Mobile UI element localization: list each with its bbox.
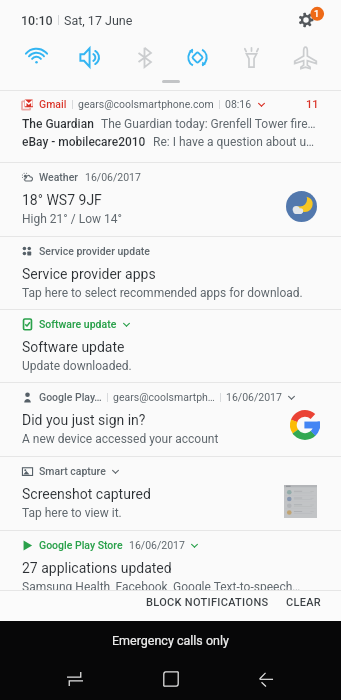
staticText: Gmail [39, 98, 67, 110]
staticText: Did you just sign in? [22, 412, 146, 428]
staticText: The Guardian [22, 117, 94, 131]
staticText: A new device accessed your account [22, 432, 219, 446]
staticText: gears@coolsmartphone.com [78, 98, 214, 110]
staticText: Software update [22, 339, 125, 355]
staticText: Sat, 17 June [64, 13, 133, 28]
staticText: 10:10 [21, 13, 53, 28]
staticText: 27 applications updated [22, 560, 172, 576]
button[interactable]: Wi-Fi [15, 36, 57, 78]
button[interactable]: Settings [297, 5, 327, 35]
staticText: High 21° / Low 14° [22, 212, 122, 226]
staticText: BLOCK NOTIFICATIONS [146, 596, 269, 609]
staticText: 16/06/2017 [85, 171, 141, 183]
staticText: Re: I have a question about u… [153, 135, 315, 149]
button[interactable]: Sound [69, 36, 111, 78]
button[interactable]: Weather [0, 163, 341, 236]
staticText: The Guardian today: Grenfell Tower fire… [101, 117, 316, 131]
staticText: Google Play Store [39, 539, 123, 551]
button[interactable]: CLEAR [283, 591, 325, 614]
button[interactable]: Google Play… [0, 383, 341, 456]
staticText: Emergency calls only [112, 633, 229, 648]
staticText: Service provider update [39, 245, 150, 257]
staticText: 16/06/2017 [129, 539, 185, 551]
button[interactable]: Recents [53, 659, 97, 698]
button[interactable]: Bluetooth [123, 36, 165, 78]
staticText: Screenshot captured [22, 486, 151, 502]
staticText: 11 [306, 98, 319, 111]
staticText: 08:16 [225, 98, 252, 110]
staticText: 16/06/2017 [226, 391, 282, 403]
button[interactable]: Software update [0, 310, 341, 382]
button[interactable]: Smart capture [0, 457, 341, 530]
staticText: Update downloaded. [22, 359, 132, 373]
staticText: Samsung Health, Facebook, Google Text-to… [22, 580, 301, 590]
button[interactable]: Gmail [0, 91, 341, 162]
staticText: eBay - mobilecare2010 [22, 135, 146, 149]
staticText: Smart capture [39, 465, 106, 477]
button[interactable]: BLOCK NOTIFICATIONS [143, 591, 272, 614]
staticText: Service provider apps [22, 266, 156, 282]
button[interactable]: Home [149, 659, 193, 698]
staticText: Tap here to view it. [22, 506, 122, 520]
staticText: 1 [314, 9, 320, 20]
staticText: gears@coolsmartph… [113, 391, 215, 403]
staticText: Weather [39, 171, 79, 183]
button[interactable]: Sync [176, 36, 218, 78]
staticText: Software update [39, 318, 117, 330]
button[interactable]: Service provider update [0, 237, 341, 309]
button[interactable]: Airplane mode [284, 36, 326, 78]
button[interactable]: Google Play Store [0, 531, 341, 590]
button[interactable]: Flashlight [230, 36, 272, 78]
staticText: 18° WS7 9JF [22, 192, 102, 208]
staticText: Tap here to select recommended apps for … [22, 286, 303, 300]
staticText: CLEAR [286, 596, 322, 609]
staticText: Google Play… [39, 391, 102, 403]
button[interactable]: Back [244, 659, 288, 698]
